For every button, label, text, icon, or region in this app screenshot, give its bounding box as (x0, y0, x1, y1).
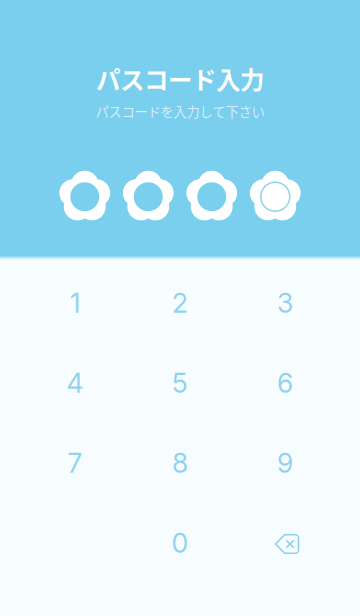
staticText: 8 (172, 447, 188, 479)
staticText: 2 (172, 287, 188, 319)
button[interactable]: 2 (127, 263, 232, 343)
button[interactable]: 4 (22, 343, 127, 423)
button[interactable]: 3 (232, 263, 337, 343)
staticText: パスコードを入力して下さい (95, 101, 264, 121)
button[interactable]: Delete (232, 503, 337, 583)
button[interactable]: 5 (127, 343, 232, 423)
staticText: パスコード入力 (96, 61, 264, 96)
staticText: 7 (67, 447, 82, 479)
staticText: 0 (171, 527, 188, 559)
staticText: 9 (277, 447, 293, 479)
staticText: 4 (66, 367, 83, 399)
button[interactable]: 0 (127, 503, 232, 583)
button[interactable]: 9 (232, 423, 337, 503)
staticText: 3 (277, 287, 293, 319)
button[interactable]: 1 (22, 263, 127, 343)
button[interactable]: 6 (232, 343, 337, 423)
button[interactable]: 7 (22, 423, 127, 503)
staticText: 1 (70, 287, 80, 319)
button[interactable]: 8 (127, 423, 232, 503)
staticText: 5 (172, 367, 188, 399)
staticText: 6 (277, 367, 293, 399)
